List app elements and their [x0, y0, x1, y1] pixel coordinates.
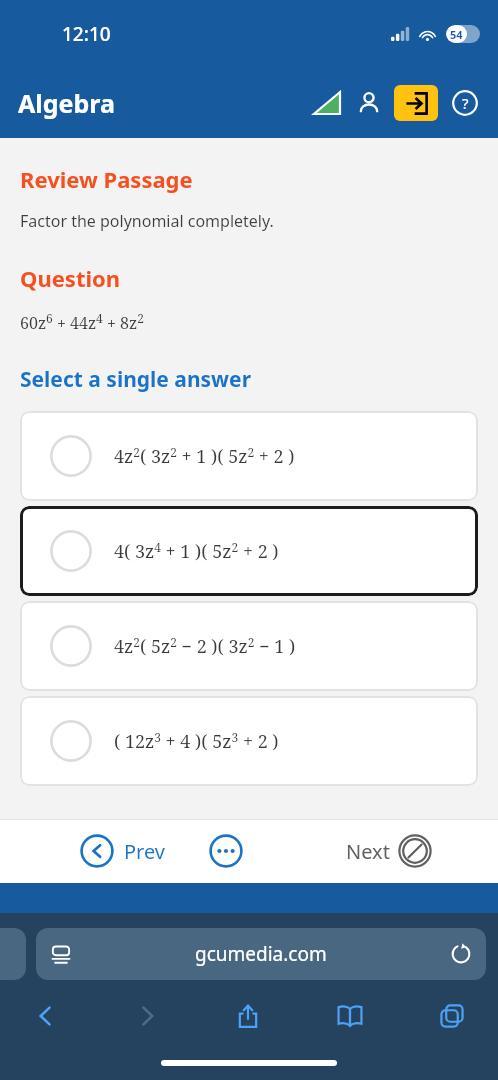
staticText: gcumedia.com	[195, 941, 327, 967]
button[interactable]: Forward	[125, 994, 169, 1038]
button[interactable]: Sign in	[394, 85, 438, 121]
button[interactable]: Bookmarks	[328, 994, 372, 1038]
staticText: ( 12z3 + 4 )( 5z3 + 2 )	[114, 729, 279, 754]
staticText: 12:10	[62, 21, 111, 47]
button[interactable]: Progress	[310, 86, 344, 120]
button[interactable]: More options	[207, 832, 245, 870]
button[interactable]: gcumedia.com	[36, 928, 486, 980]
staticText: 4z2( 3z2 + 1 )( 5z2 + 2 )	[114, 444, 295, 469]
button[interactable]: Back	[24, 994, 68, 1038]
staticText: Select a single answer	[20, 365, 252, 394]
button[interactable]: Tabs	[430, 994, 474, 1038]
staticText: 54	[450, 27, 463, 42]
button[interactable]: Help	[448, 86, 482, 120]
button[interactable]: Previous tab	[0, 928, 26, 980]
staticText: ?	[462, 93, 469, 113]
staticText: 60z6 + 44z4 + 8z2	[20, 310, 144, 333]
staticText: Next	[346, 838, 390, 865]
button[interactable]: Share	[226, 994, 270, 1038]
button[interactable]: 4( 3z4 + 1 )( 5z2 + 2 )	[20, 506, 478, 596]
button[interactable]: Account	[352, 86, 386, 120]
staticText: Review Passage	[20, 164, 193, 194]
button[interactable]: Next	[346, 834, 498, 868]
button[interactable]: 4z2( 5z2 − 2 )( 3z2 − 1 )	[20, 601, 478, 691]
button[interactable]: 4z2( 3z2 + 1 )( 5z2 + 2 )	[20, 411, 478, 501]
staticText: Factor the polynomial completely.	[20, 210, 274, 232]
staticText: Algebra	[18, 86, 115, 120]
button[interactable]: Prev	[80, 834, 165, 868]
button[interactable]: ( 12z3 + 4 )( 5z3 + 2 )	[20, 696, 478, 786]
staticText: 4z2( 5z2 − 2 )( 3z2 − 1 )	[114, 634, 296, 659]
staticText: Prev	[124, 838, 165, 865]
staticText: Question	[20, 263, 121, 293]
staticText: 4( 3z4 + 1 )( 5z2 + 2 )	[114, 539, 279, 564]
